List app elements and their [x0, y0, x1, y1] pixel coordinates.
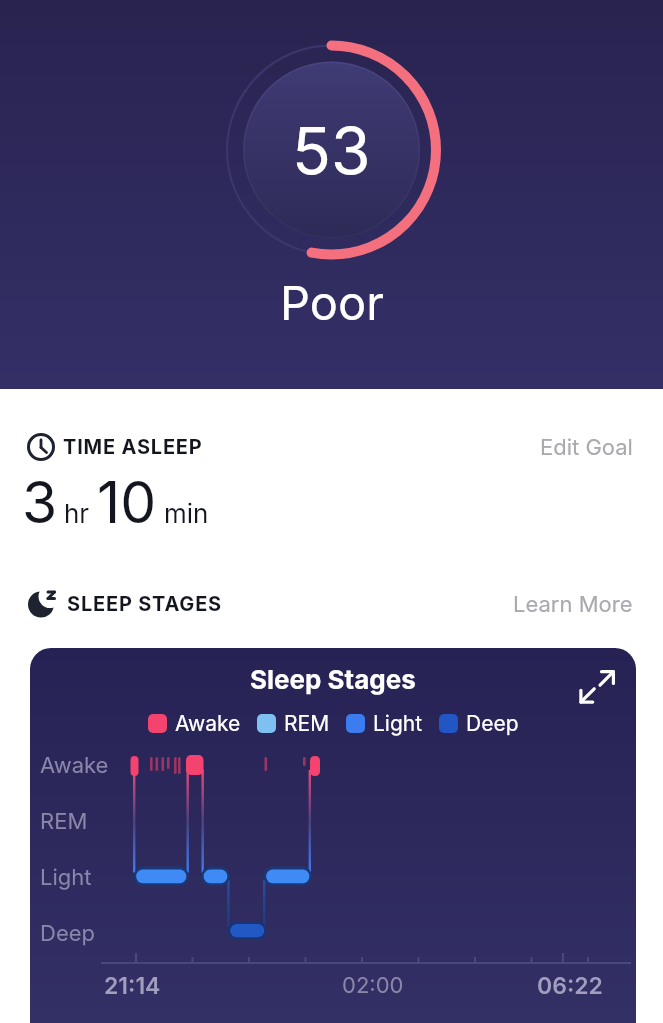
staticText: Deep [40, 920, 95, 947]
staticText: 53 [292, 112, 371, 189]
staticText: 02:00 [342, 972, 404, 999]
staticText: SLEEP STAGES [67, 592, 223, 616]
staticText: Poor [280, 274, 384, 322]
staticText: 06:22 [537, 972, 603, 1000]
staticText: REM [284, 711, 330, 736]
staticText: min [164, 498, 209, 529]
staticText: Awake [175, 711, 241, 736]
staticText: Light [40, 864, 92, 891]
staticText: hr [64, 498, 90, 529]
staticText: TIME ASLEEP [63, 435, 203, 459]
staticText: Edit Goal [540, 434, 633, 461]
staticText: Sleep Stages [250, 664, 416, 695]
staticText: REM [40, 808, 88, 835]
button[interactable] [578, 664, 618, 704]
staticText: 3 [22, 468, 58, 530]
button[interactable]: Edit Goal [540, 434, 633, 461]
staticText: Learn More [513, 591, 633, 618]
staticText: 21:14 [104, 972, 161, 1000]
button[interactable]: Learn More [513, 591, 633, 618]
staticText: Deep [466, 711, 519, 736]
button[interactable]: Sleep Stages [30, 648, 636, 1023]
staticText: Awake [40, 752, 109, 779]
staticText: Light [373, 711, 423, 736]
staticText: 10 [97, 468, 157, 530]
